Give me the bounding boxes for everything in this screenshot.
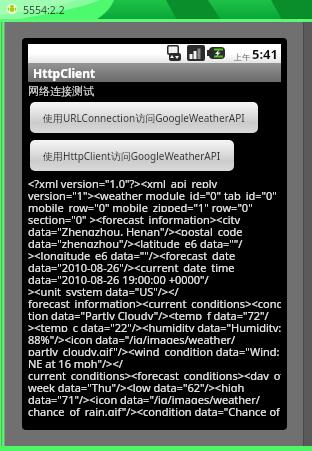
staticText: tion data="Partly Cloudy"/><temp_f data=… [28, 308, 269, 320]
staticText: 网络连接测试 [28, 84, 94, 98]
staticText: <?xml version="1.0"?><xml_api_reply [28, 176, 218, 188]
staticText: 上午 [234, 52, 250, 62]
staticText: data="2010-08-26 19:00:00 +0000"/ [28, 272, 209, 284]
staticText: forecast_information><current_conditions… [28, 296, 281, 308]
staticText: 使用HttpClient访问GoogleWeatherAPI [43, 149, 221, 163]
staticText: partly_cloudy.gif"/><wind_condition data… [28, 344, 280, 356]
staticText: section="0" ><forecast_information><city [28, 212, 241, 224]
other: Android emulator [7, 4, 17, 14]
staticText: 5:41 [252, 45, 278, 63]
staticText: current_conditions><forecast_conditions>… [28, 368, 281, 380]
staticText: 88%"/><icon data="/ig/images/weather/ [28, 332, 236, 344]
staticText: NE at 16 mph"/></ [28, 356, 123, 368]
staticText: ><temp_c data="22"/><humidity data="Humi… [28, 320, 281, 332]
staticText: data="Zhengzhou, Henan"/><postal_code [28, 224, 243, 236]
staticText: version="1"><weather module_id="0" tab_i… [28, 188, 277, 200]
staticText: HttpClient [33, 65, 96, 81]
staticText: data="2010-08-26"/><current_date_time [28, 260, 235, 272]
staticText: 5554:2.2 [23, 3, 65, 17]
staticText: data="71"/><icon data="/ig/images/weathe… [28, 392, 260, 404]
staticText: mobile_row="0" mobile_zipped="1" row="0" [28, 200, 253, 212]
button[interactable]: 使用URLConnection访问GoogleWeatherAPI [30, 102, 258, 133]
staticText: ><unit_system data="US"/></ [28, 284, 179, 296]
staticText: 使用URLConnection访问GoogleWeatherAPI [43, 111, 245, 125]
staticText: week data="Thu"/><low data="62"/><high [28, 380, 245, 392]
button[interactable]: 使用HttpClient访问GoogleWeatherAPI [30, 140, 234, 171]
staticText: chance_of_rain.gif"/><condition data="Ch… [28, 404, 280, 416]
staticText: data="zhengzhou"/><latitude_e6 data=""/ [28, 236, 243, 248]
staticText: ><longitude_e6 data=""/><forecast_date [28, 248, 236, 260]
